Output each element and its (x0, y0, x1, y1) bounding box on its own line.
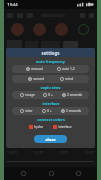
button[interactable]: 2 seconds (60, 109, 82, 113)
staticText: manual (31, 67, 43, 71)
staticText: 2 seconds (66, 109, 81, 113)
staticText: image (25, 93, 35, 97)
staticText: 0 + (48, 93, 53, 97)
staticText: 1 23 FT (84, 145, 94, 149)
button[interactable]: mind (59, 77, 74, 81)
button[interactable]: 0 + (42, 93, 54, 97)
staticText: mind (65, 77, 73, 81)
staticText: 1 23 FT (33, 145, 43, 149)
staticText: 1 23 FT (7, 151, 17, 155)
staticText: close (45, 137, 56, 142)
button[interactable]: close (34, 135, 67, 143)
staticText: explo time (40, 85, 61, 90)
button[interactable]: hydro (29, 125, 43, 129)
staticText: interface (58, 125, 72, 129)
staticText: 0 + (47, 109, 52, 113)
staticText: interface (42, 101, 60, 106)
button[interactable]: interface (53, 125, 72, 129)
staticText: 1 23 FT (58, 145, 68, 149)
button[interactable]: Info (14, 168, 32, 179)
button[interactable]: Settings (69, 168, 87, 179)
button[interactable]: 0 + (41, 109, 53, 113)
staticText: 1 23 FT (84, 151, 94, 155)
staticText: auto frequency (36, 59, 65, 64)
button[interactable]: settings (6, 48, 95, 57)
button[interactable]: Share (42, 168, 60, 179)
button[interactable]: inter (19, 109, 34, 113)
staticText: auto 1-2 (62, 67, 75, 71)
staticText: connect colors (37, 117, 65, 122)
staticText: 19:44 (7, 2, 18, 7)
button[interactable]: manual (25, 67, 44, 71)
button[interactable]: 2 seconds (61, 93, 83, 97)
button[interactable]: second (27, 77, 45, 81)
staticText: 1 23 FT (33, 151, 43, 155)
staticText: second (33, 77, 44, 81)
staticText: inter (25, 109, 33, 113)
staticText: settings (41, 50, 60, 56)
button[interactable]: image (19, 93, 36, 97)
staticText: 1 23 FT (7, 145, 17, 149)
button[interactable]: auto 1-2 (56, 67, 76, 71)
staticText: hydro (34, 125, 43, 129)
staticText: 1 23 FT (58, 151, 68, 155)
staticText: 2 seconds (67, 93, 82, 97)
